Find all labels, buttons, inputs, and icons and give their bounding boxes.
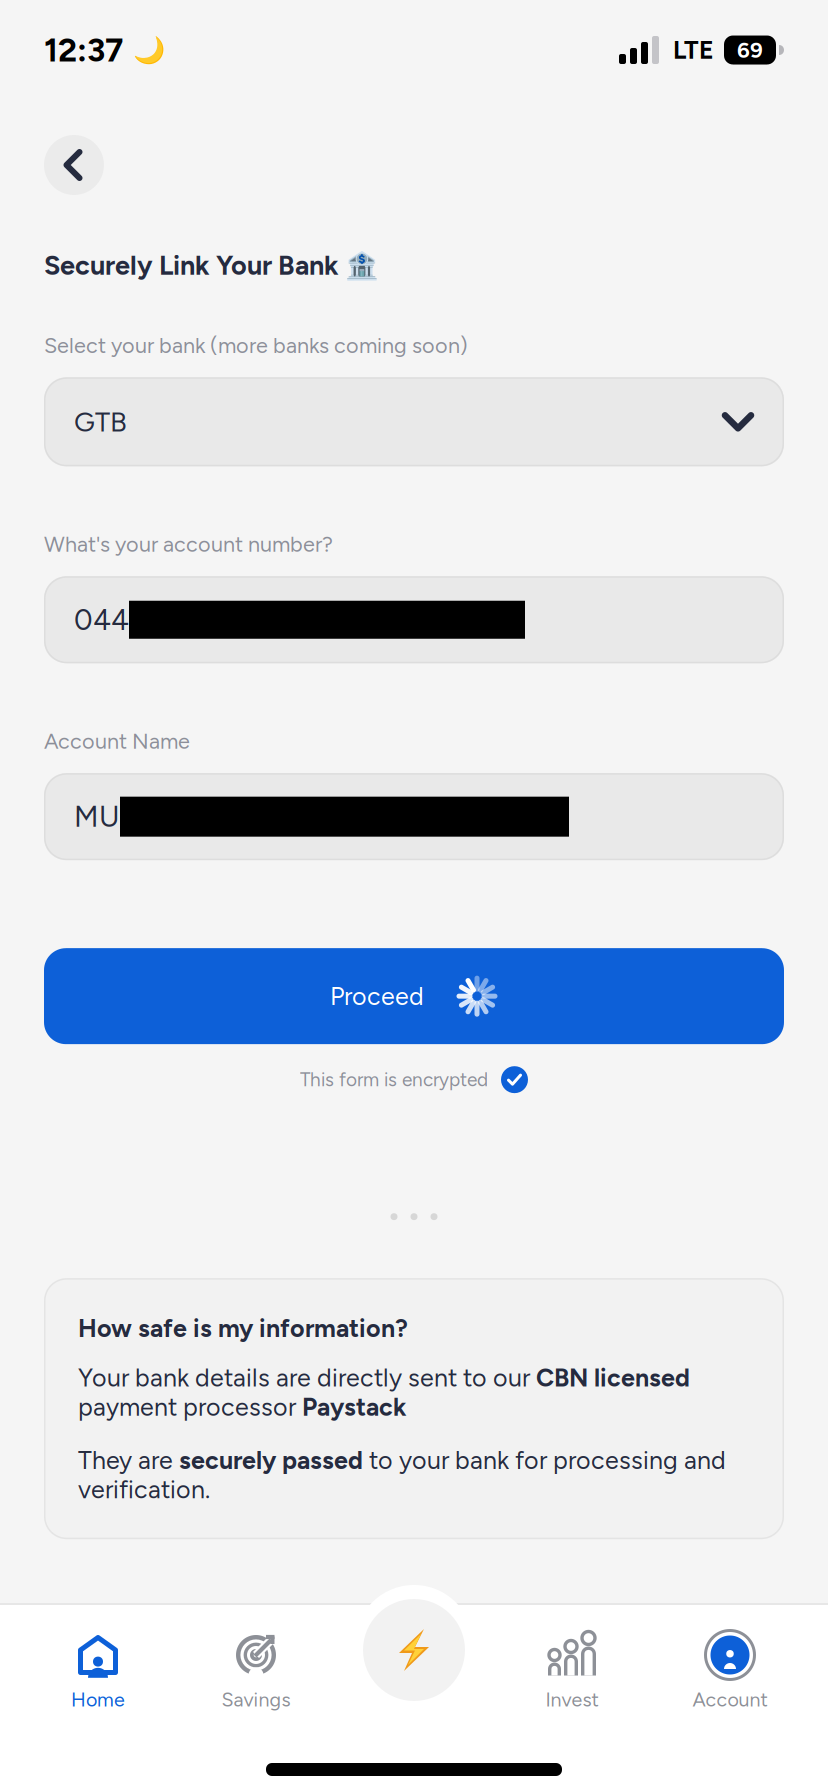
staticText: Invest	[545, 1688, 598, 1711]
staticText: Savings	[221, 1688, 290, 1711]
staticText: Proceed	[330, 981, 424, 1011]
button[interactable]: Account	[651, 1635, 809, 1711]
staticText: LTE	[673, 35, 714, 65]
staticText: Home	[71, 1688, 125, 1711]
staticText: How safe is my information?	[78, 1313, 408, 1343]
staticText: 044	[74, 602, 129, 637]
staticText: They are securely passed to your bank fo…	[78, 1446, 726, 1504]
staticText: Account	[692, 1688, 767, 1711]
staticText: What's your account number?	[44, 531, 333, 557]
button[interactable]: Savings	[177, 1635, 335, 1711]
staticText: MU	[74, 799, 120, 834]
staticText: 🌙	[133, 35, 165, 65]
staticText: Your bank details are directly sent to o…	[78, 1363, 690, 1422]
button[interactable]: Back	[44, 135, 104, 195]
staticText: Select your bank (more banks coming soon…	[44, 332, 468, 358]
button[interactable]: Quick actions	[355, 1591, 473, 1709]
button[interactable]: Proceed	[44, 948, 784, 1044]
staticText: This form is encrypted	[300, 1068, 488, 1091]
staticText: 12:37	[44, 30, 123, 70]
button[interactable]: GTB	[44, 377, 784, 466]
button[interactable]: Invest	[493, 1635, 651, 1711]
staticText: Securely Link Your Bank 🏦	[44, 249, 379, 281]
staticText: Account Name	[44, 728, 190, 754]
button[interactable]: Home	[19, 1635, 177, 1711]
staticText: 69	[737, 37, 763, 63]
staticText: GTB	[74, 405, 127, 438]
